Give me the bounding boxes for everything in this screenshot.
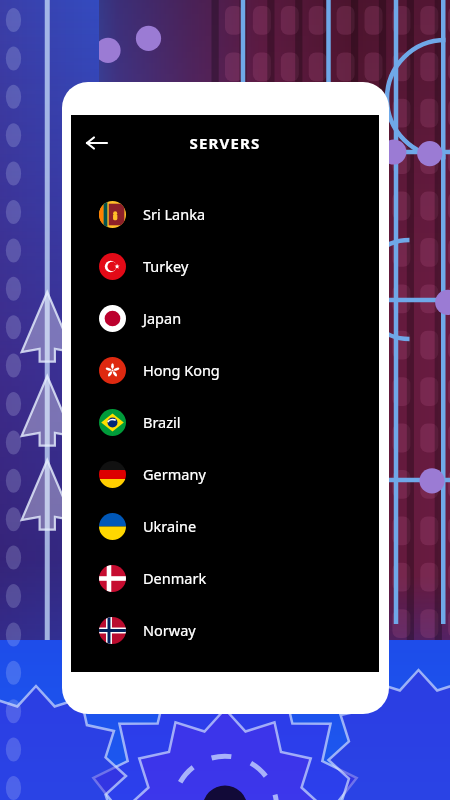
staticText: Sri Lanka — [143, 204, 206, 224]
staticText: Hong Kong — [143, 360, 220, 380]
staticText: Germany — [143, 464, 206, 484]
staticText: Ukraine — [143, 516, 197, 536]
staticText: Brazil — [143, 412, 181, 432]
staticText: Denmark — [143, 568, 207, 588]
button[interactable]: Hong Kong — [71, 344, 379, 396]
button[interactable]: Norway — [71, 604, 379, 656]
staticText: SERVERS — [71, 133, 379, 153]
staticText: Japan — [143, 308, 182, 328]
button[interactable]: Back — [75, 121, 119, 165]
button[interactable]: Japan — [71, 292, 379, 344]
button[interactable]: Ukraine — [71, 500, 379, 552]
button[interactable]: Brazil — [71, 396, 379, 448]
staticText: Norway — [143, 620, 196, 640]
button[interactable]: Germany — [71, 448, 379, 500]
button[interactable]: Denmark — [71, 552, 379, 604]
button[interactable]: Sri Lanka — [71, 188, 379, 240]
staticText: Turkey — [143, 256, 189, 276]
button[interactable]: Turkey — [71, 240, 379, 292]
